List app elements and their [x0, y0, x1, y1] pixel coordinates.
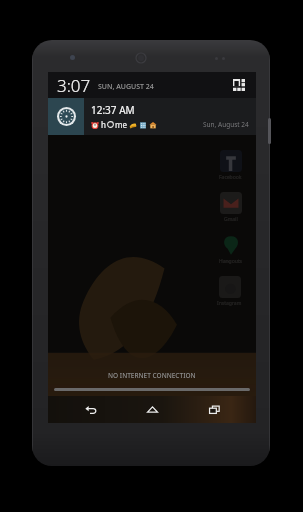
button[interactable]: Back — [73, 396, 107, 423]
staticText: Gmail — [224, 216, 238, 223]
button[interactable] — [54, 388, 250, 391]
staticText: Facebook — [219, 174, 242, 181]
staticText: NO INTERNET CONNECTION — [108, 371, 196, 380]
staticText: Sun, August 24 — [203, 120, 249, 129]
staticText: me — [115, 119, 127, 130]
staticText: h — [101, 119, 106, 130]
button[interactable]: 12:37 AM — [48, 98, 256, 135]
staticText: Instagram — [217, 300, 242, 307]
button[interactable]: Quick settings — [230, 76, 248, 94]
button[interactable]: Recent apps — [197, 396, 231, 423]
staticText: 3:07 — [57, 74, 91, 97]
staticText: 12:37 AM — [91, 103, 135, 117]
staticText: Hangouts — [219, 258, 242, 265]
staticText: SUN, AUGUST 24 — [98, 82, 154, 92]
button[interactable]: NO INTERNET CONNECTION — [48, 367, 256, 383]
button[interactable]: Home — [135, 396, 169, 423]
